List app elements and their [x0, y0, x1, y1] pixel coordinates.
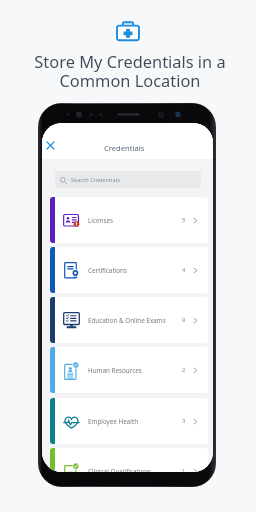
button[interactable]: Certifications [50, 247, 208, 293]
staticText: Certifications [88, 266, 127, 275]
staticText: Credentials [104, 143, 145, 153]
button[interactable]: Human Resources [50, 347, 208, 393]
staticText: Employee Health [88, 417, 139, 426]
staticText: Search Credentials [71, 176, 120, 184]
button[interactable]: Education & Online Exams [50, 297, 208, 343]
staticText: Education & Online Exams [88, 316, 166, 325]
button[interactable]: Employee Health [50, 398, 208, 444]
button[interactable]: Clinical Qualifications [50, 448, 208, 472]
staticText: 9 [182, 316, 186, 324]
staticText: 5 [182, 216, 186, 224]
staticText: Human Resources [88, 366, 142, 375]
staticText: 1 [182, 467, 186, 472]
button[interactable]: Licenses [50, 197, 208, 243]
staticText: Licenses [88, 216, 113, 225]
staticText: 3 [182, 417, 186, 425]
button[interactable]: Close [42, 137, 59, 154]
button[interactable]: Search Credentials [55, 171, 201, 188]
staticText: Clinical Qualifications [88, 467, 152, 472]
staticText: Store My Credentials in a Common Locatio… [2, 50, 256, 92]
staticText: 4 [182, 266, 186, 274]
staticText: 2 [182, 366, 186, 374]
